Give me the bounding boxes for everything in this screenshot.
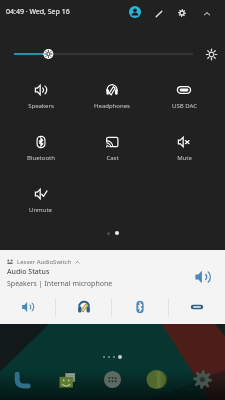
staticText: Unmute bbox=[29, 206, 52, 214]
staticText: Cast bbox=[106, 154, 119, 162]
staticText: Speakers | Internal microphone bbox=[7, 279, 113, 289]
button[interactable]: Headset bbox=[56, 295, 111, 319]
staticText: Speakers bbox=[28, 102, 54, 110]
button[interactable]: Gallery bbox=[135, 366, 180, 392]
button[interactable]: Bluetooth bbox=[112, 295, 168, 319]
button[interactable]: Speakers bbox=[5, 79, 76, 131]
button[interactable]: Display settings bbox=[202, 45, 220, 63]
button[interactable]: Speaker output bbox=[190, 264, 216, 290]
staticText: Mute bbox=[177, 154, 192, 162]
staticText: Audio Status bbox=[7, 267, 50, 277]
staticText: Lesser AudioSwitch bbox=[17, 258, 72, 266]
button[interactable]: Cast bbox=[76, 131, 148, 183]
button[interactable]: Headphones bbox=[76, 79, 148, 131]
button[interactable]: Settings bbox=[180, 366, 225, 392]
button[interactable]: USB DAC bbox=[148, 79, 220, 131]
button[interactable]: All apps bbox=[90, 366, 135, 392]
button[interactable]: User account bbox=[124, 1, 146, 23]
staticText: Bluetooth bbox=[27, 154, 55, 162]
button[interactable]: Brightness bbox=[0, 42, 200, 66]
staticText: USB DAC bbox=[172, 102, 197, 110]
button[interactable]: USB bbox=[169, 295, 225, 319]
staticText: 04:49 · Wed, Sep 16 bbox=[6, 7, 70, 17]
staticText: Headphones bbox=[94, 102, 130, 110]
button[interactable]: Edit tiles bbox=[148, 3, 170, 25]
button[interactable]: Collapse bbox=[196, 3, 218, 25]
button[interactable]: Speaker bbox=[0, 295, 55, 319]
button[interactable]: Phone bbox=[0, 366, 45, 392]
button[interactable]: Mute bbox=[148, 131, 220, 183]
button[interactable]: Messages bbox=[45, 366, 90, 392]
button[interactable]: Bluetooth bbox=[5, 131, 76, 183]
button[interactable]: Settings bbox=[171, 2, 193, 24]
button[interactable]: Unmute bbox=[5, 183, 76, 235]
